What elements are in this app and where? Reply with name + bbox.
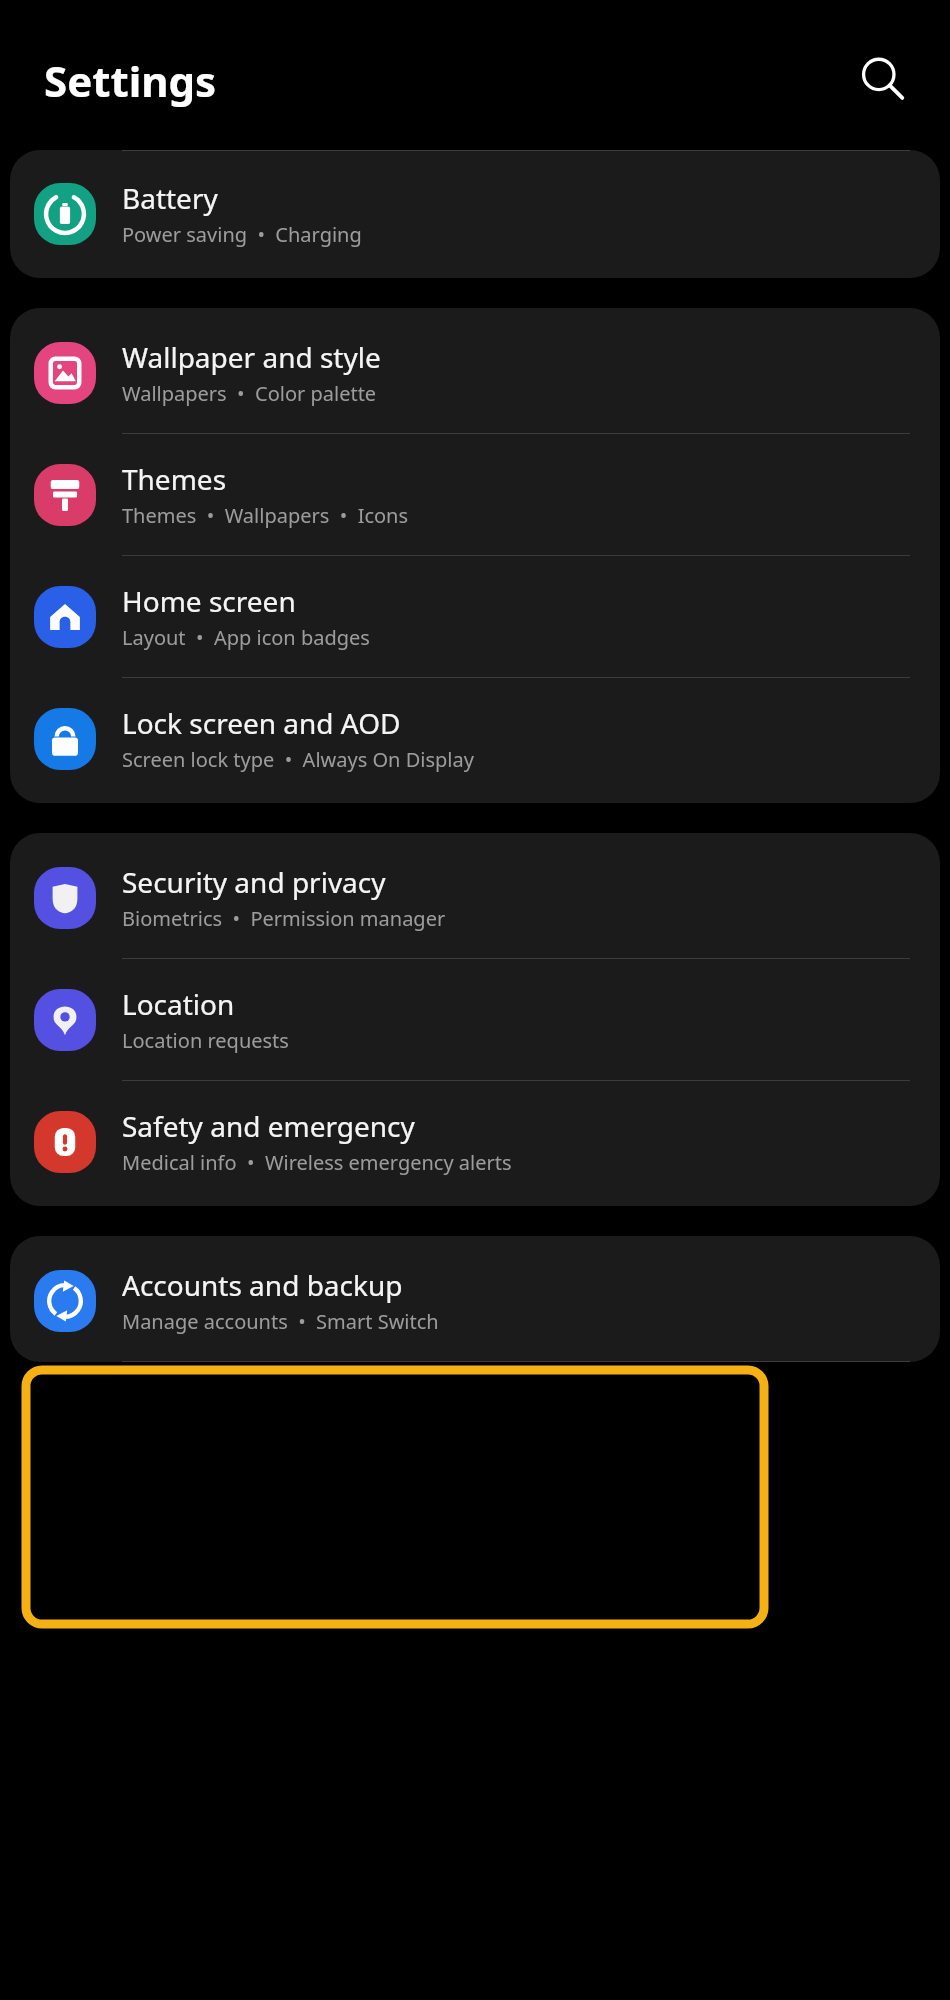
button[interactable]: Security and privacy (10, 833, 940, 958)
staticText: Battery (122, 179, 218, 217)
staticText: Lock screen and AOD (122, 704, 401, 742)
button[interactable]: Home screen (10, 556, 940, 677)
button[interactable]: Lock screen and AOD (10, 678, 940, 803)
staticText: Layout • App icon badges (122, 624, 370, 651)
staticText: Themes (122, 460, 227, 498)
staticText: Manage accounts • Smart Switch (122, 1308, 439, 1335)
staticText: Screen lock type • Always On Display (122, 746, 474, 773)
button[interactable]: Accounts and backup (10, 1236, 940, 1361)
staticText: Settings (44, 52, 217, 109)
staticText: Biometrics • Permission manager (122, 905, 446, 932)
staticText: Wallpapers • Color palette (122, 380, 377, 407)
staticText: Home screen (122, 582, 296, 620)
staticText: Medical info • Wireless emergency alerts (122, 1149, 512, 1176)
staticText: Themes • Wallpapers • Icons (122, 502, 409, 529)
button[interactable]: Safety and emergency (10, 1081, 940, 1206)
button[interactable]: Battery (10, 151, 940, 278)
button[interactable]: Search (850, 47, 914, 111)
staticText: Safety and emergency (122, 1107, 415, 1145)
staticText: Location requests (122, 1027, 289, 1054)
button[interactable]: Themes (10, 434, 940, 555)
staticText: Security and privacy (122, 863, 386, 901)
staticText: Location (122, 985, 235, 1023)
staticText: Power saving • Charging (122, 221, 362, 248)
staticText: Accounts and backup (122, 1266, 403, 1304)
button[interactable]: Location (10, 959, 940, 1080)
button[interactable]: Wallpaper and style (10, 308, 940, 433)
staticText: Wallpaper and style (122, 338, 381, 376)
